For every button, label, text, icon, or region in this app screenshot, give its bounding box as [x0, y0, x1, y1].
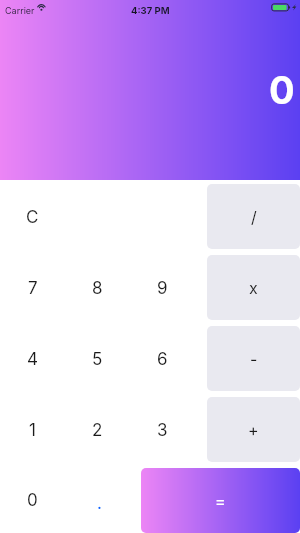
- staticText: C: [26, 207, 39, 228]
- staticText: x: [249, 278, 258, 297]
- button[interactable]: /: [207, 184, 300, 249]
- staticText: 0: [269, 67, 295, 113]
- staticText: 8: [92, 278, 103, 299]
- button[interactable]: 4: [0, 322, 65, 393]
- button[interactable]: x: [207, 255, 300, 320]
- staticText: 9: [157, 278, 168, 299]
- staticText: 4: [27, 349, 38, 370]
- button[interactable]: -: [207, 326, 300, 391]
- button[interactable]: 6: [130, 322, 195, 393]
- staticText: 5: [92, 349, 103, 370]
- staticText: 3: [157, 420, 168, 441]
- staticText: 0: [27, 490, 38, 511]
- button[interactable]: 1: [0, 393, 65, 464]
- button[interactable]: =: [141, 468, 300, 533]
- button[interactable]: C: [0, 180, 65, 251]
- button[interactable]: +: [207, 397, 300, 462]
- staticText: -: [250, 349, 258, 368]
- staticText: 1: [29, 420, 36, 441]
- other: Battery charging: [271, 3, 296, 12]
- button[interactable]: 7: [0, 251, 65, 322]
- button[interactable]: 0: [0, 464, 65, 533]
- button[interactable]: 3: [130, 393, 195, 464]
- staticText: /: [251, 207, 257, 226]
- staticText: +: [248, 420, 259, 439]
- button[interactable]: 2: [65, 393, 130, 464]
- staticText: 7: [28, 278, 38, 299]
- button[interactable]: 8: [65, 251, 130, 322]
- staticText: 4:37 PM: [131, 5, 170, 16]
- staticText: 2: [92, 420, 103, 441]
- staticText: Carrier: [5, 5, 35, 16]
- button[interactable]: 5: [65, 322, 130, 393]
- button[interactable]: .: [65, 464, 141, 533]
- button[interactable]: 9: [130, 251, 195, 322]
- staticText: =: [215, 491, 226, 510]
- staticText: .: [97, 493, 102, 514]
- staticText: 6: [157, 349, 168, 370]
